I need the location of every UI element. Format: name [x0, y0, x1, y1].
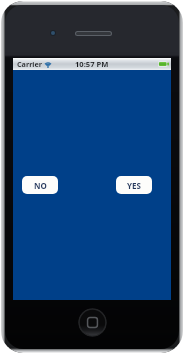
staticText: 10:57 PM [75, 59, 109, 69]
staticText: Carrier [17, 59, 42, 69]
staticText: YES [127, 180, 141, 191]
button[interactable]: NO [22, 176, 58, 194]
staticText: NO [34, 180, 47, 191]
button[interactable]: Home [78, 308, 107, 337]
button[interactable]: YES [116, 176, 152, 194]
